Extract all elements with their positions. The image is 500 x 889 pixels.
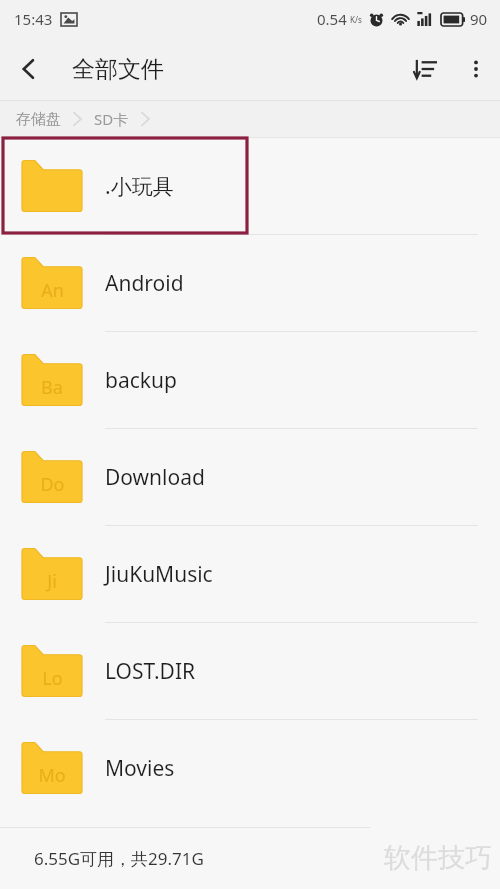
staticText: Movies (105, 754, 175, 783)
button[interactable]: Ba (0, 332, 500, 428)
staticText: 6.55G可用，共29.71G (34, 847, 204, 870)
button[interactable]: Do (0, 429, 500, 525)
button[interactable]: 存储盘 (16, 110, 61, 129)
staticText: K/s (350, 14, 362, 25)
staticText: 90 (470, 9, 488, 29)
button[interactable]: More options (452, 38, 500, 100)
button[interactable]: Ji (0, 526, 500, 622)
staticText: 15:43 (14, 9, 53, 29)
staticText: 全部文件 (72, 55, 164, 84)
button[interactable]: An (0, 235, 500, 331)
staticText: 软件技巧 (384, 841, 492, 875)
staticText: LOST.DIR (105, 657, 196, 686)
staticText: Ba (41, 375, 63, 400)
button[interactable]: Mo (0, 720, 500, 816)
staticText: Do (40, 472, 65, 497)
button[interactable]: Sort (398, 38, 452, 100)
staticText: 存储盘 (16, 110, 61, 129)
staticText: An (41, 278, 64, 303)
staticText: SD卡 (94, 109, 129, 129)
button[interactable]: Lo (0, 623, 500, 719)
staticText: Download (105, 463, 205, 492)
staticText: Ji (47, 569, 57, 594)
button[interactable]: Back (0, 38, 58, 100)
staticText: Lo (42, 666, 63, 691)
button[interactable]: SD卡 (94, 109, 129, 129)
staticText: Mo (38, 763, 66, 788)
button[interactable]: .小玩具 (0, 138, 500, 234)
staticText: .小玩具 (105, 172, 174, 201)
staticText: JiuKuMusic (105, 560, 213, 589)
staticText: backup (105, 366, 177, 395)
staticText: 0.54 (317, 9, 347, 29)
staticText: Android (105, 269, 184, 298)
